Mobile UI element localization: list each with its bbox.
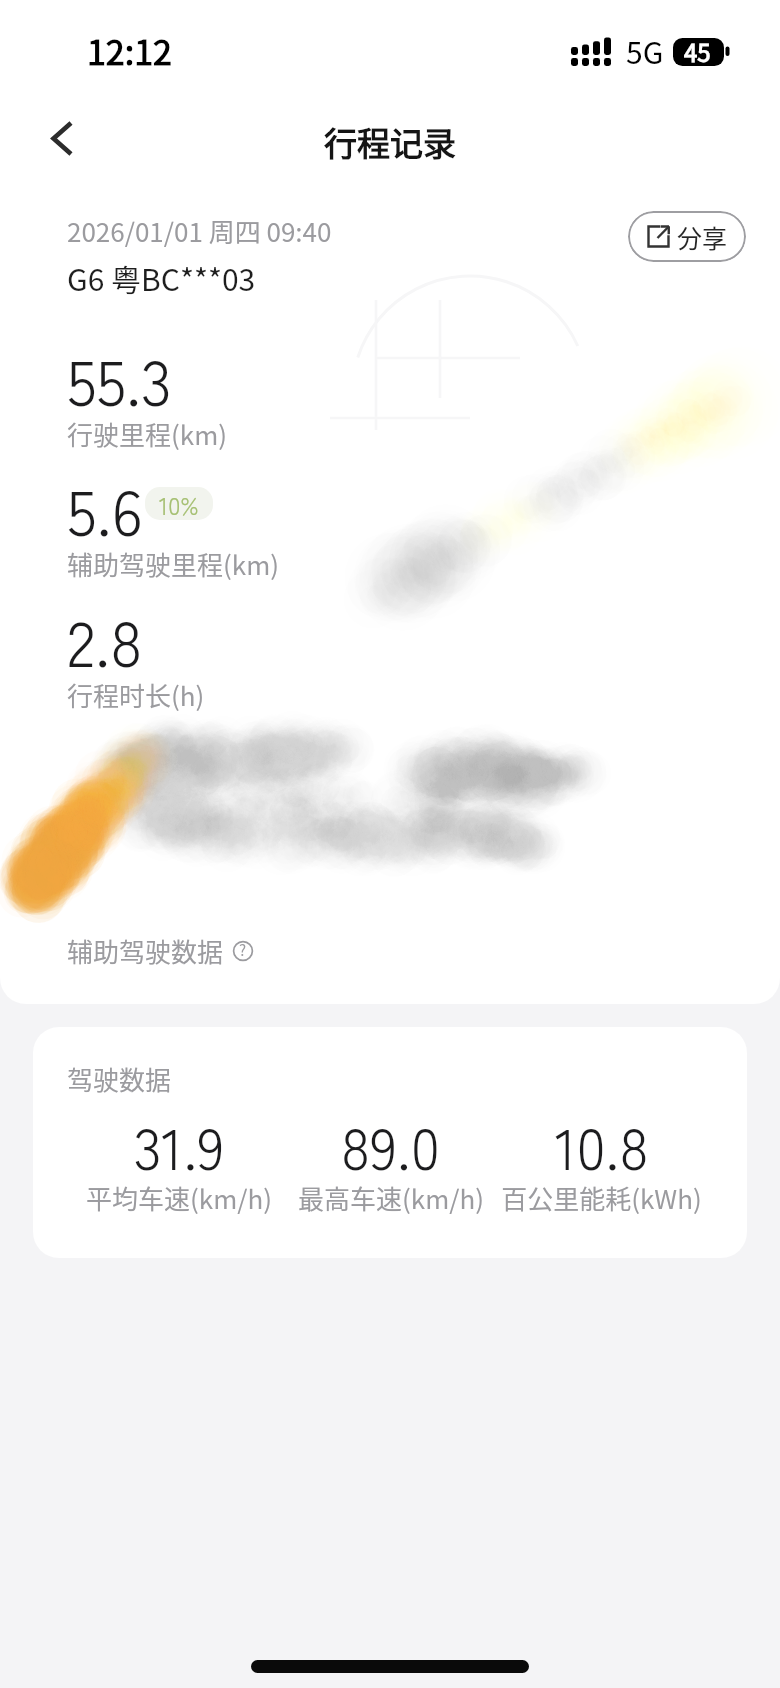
staticText: 5.6 xyxy=(67,463,143,554)
staticText: 2.8 xyxy=(67,594,143,685)
staticText: 分享 xyxy=(677,219,728,255)
staticText: 最高车速(km/h) xyxy=(298,1179,484,1217)
staticText: 辅助驾驶数据 xyxy=(67,932,224,970)
staticText: 10.8 xyxy=(555,1104,649,1187)
staticText: G6 粤BC***03 xyxy=(67,256,256,299)
staticText: 行程记录 xyxy=(0,118,780,166)
staticText: 行程时长(h) xyxy=(67,676,205,714)
button[interactable]: Back xyxy=(34,110,90,166)
staticText: 12:12 xyxy=(87,26,172,75)
staticText: 45 xyxy=(684,34,711,69)
staticText: 89.0 xyxy=(341,1104,440,1187)
staticText: 百公里能耗(kWh) xyxy=(501,1179,702,1217)
staticText: 5G xyxy=(626,29,664,72)
staticText: 2026/01/01 周四 09:40 xyxy=(67,212,332,250)
button[interactable]: Help xyxy=(232,940,254,962)
staticText: 10% xyxy=(159,487,199,520)
staticText: 55.3 xyxy=(67,333,172,424)
staticText: 31.9 xyxy=(134,1104,225,1187)
staticText: 驾驶数据 xyxy=(67,1060,172,1098)
button[interactable]: 分享 xyxy=(628,211,746,262)
staticText: 平均车速(km/h) xyxy=(86,1179,272,1217)
staticText: 行驶里程(km) xyxy=(67,415,228,453)
staticText: ? xyxy=(239,939,247,961)
staticText: 辅助驾驶里程(km) xyxy=(67,545,280,583)
